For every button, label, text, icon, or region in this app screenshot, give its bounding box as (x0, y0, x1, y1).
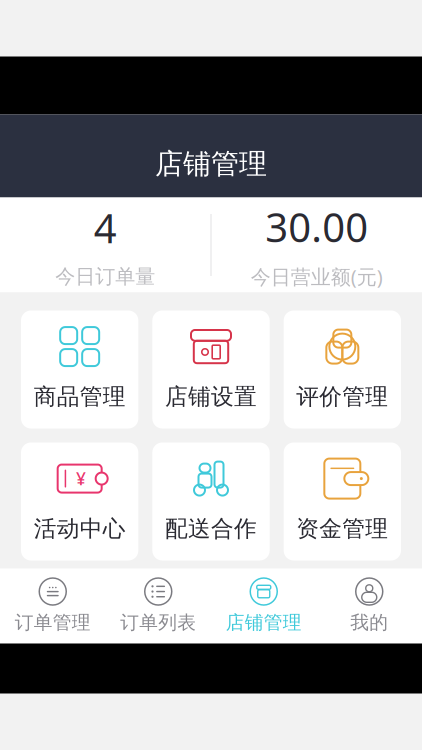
staticText: 店铺设置 (165, 383, 257, 410)
staticText: 商品管理 (34, 383, 126, 410)
staticText: 今日订单量 (55, 264, 155, 289)
staticText: 店铺管理 (155, 147, 267, 181)
button[interactable]: 订单列表 (105, 568, 211, 644)
staticText: 30.00 (265, 200, 368, 253)
staticText: 今日营业额(元) (251, 263, 383, 290)
button[interactable]: 店铺设置 (152, 310, 270, 428)
staticText: 店铺管理 (226, 611, 302, 634)
staticText: 4 (94, 201, 117, 254)
staticText: 评价管理 (296, 383, 388, 410)
staticText: 订单管理 (15, 611, 91, 634)
button[interactable]: 我的 (316, 568, 422, 644)
button[interactable]: 评价管理 (284, 310, 401, 428)
staticText: 订单列表 (120, 611, 196, 634)
button[interactable]: 配送合作 (152, 442, 270, 560)
button[interactable]: 订单管理 (0, 568, 105, 644)
button[interactable]: ¥ (21, 442, 138, 560)
staticText: 我的 (350, 611, 388, 634)
staticText: 配送合作 (165, 515, 257, 542)
staticText: 活动中心 (34, 515, 126, 542)
staticText: 资金管理 (296, 515, 388, 542)
button[interactable]: 店铺管理 (211, 568, 316, 644)
button[interactable]: 商品管理 (21, 310, 138, 428)
staticText: ¥ (76, 467, 86, 490)
button[interactable]: 资金管理 (284, 442, 401, 560)
